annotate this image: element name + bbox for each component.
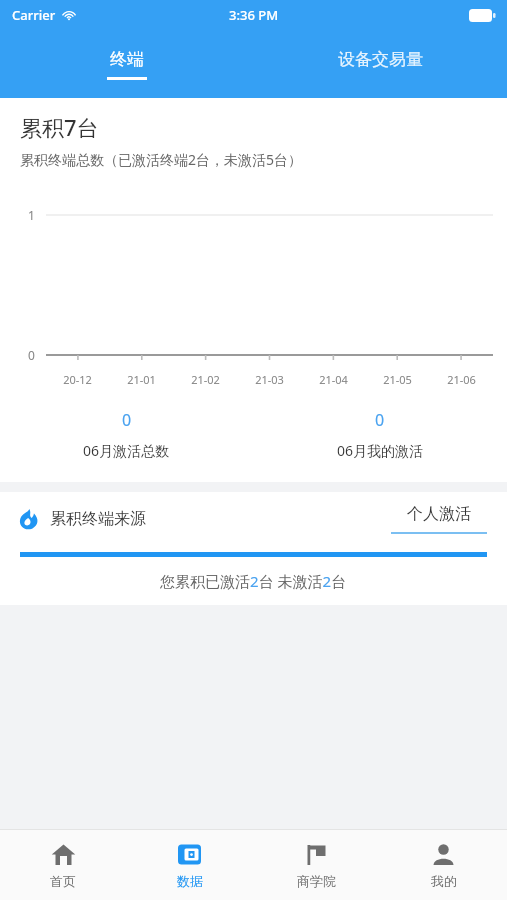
staticText: 06月激活总数 [83, 441, 170, 460]
button[interactable]: 首页 [0, 830, 126, 900]
staticText: 终端 [110, 49, 144, 70]
staticText: 06月我的激活 [337, 441, 424, 460]
button[interactable]: 数据 [126, 830, 253, 900]
staticText: 21-03 [255, 372, 284, 387]
button[interactable]: 商学院 [253, 830, 380, 900]
staticText: 累积终端来源 [50, 509, 146, 529]
staticText: 设备交易量 [338, 49, 423, 70]
staticText: 我的 [431, 873, 457, 889]
button[interactable]: 设备交易量 [253, 30, 507, 98]
button[interactable]: 个人激活 [391, 504, 487, 534]
staticText: 21-01 [127, 372, 156, 387]
button[interactable]: 0 [253, 409, 507, 460]
staticText: 累积7台 [20, 112, 99, 142]
staticText: 首页 [50, 873, 76, 889]
staticText: 个人激活 [407, 504, 471, 524]
staticText: 21-06 [447, 372, 476, 387]
button[interactable]: 我的 [380, 830, 507, 900]
staticText: 0 [375, 409, 385, 431]
staticText: 1 [28, 207, 35, 223]
staticText: 20-12 [63, 372, 92, 387]
staticText: Carrier [12, 6, 56, 24]
staticText: 您累积已激活2台 未激活2台 [160, 571, 347, 591]
staticText: 0 [28, 347, 35, 363]
staticText: 商学院 [297, 873, 336, 889]
staticText: 21-02 [191, 372, 220, 387]
staticText: 21-04 [319, 372, 348, 387]
staticText: 累积终端总数（已激活终端2台，未激活5台） [20, 150, 303, 169]
staticText: 3:36 PM [229, 6, 279, 24]
staticText: 0 [122, 409, 132, 431]
staticText: 数据 [177, 873, 203, 889]
button[interactable]: 0 [0, 409, 253, 460]
button[interactable]: 终端 [0, 30, 253, 98]
other: 来源 [18, 508, 40, 530]
staticText: 21-05 [383, 372, 412, 387]
